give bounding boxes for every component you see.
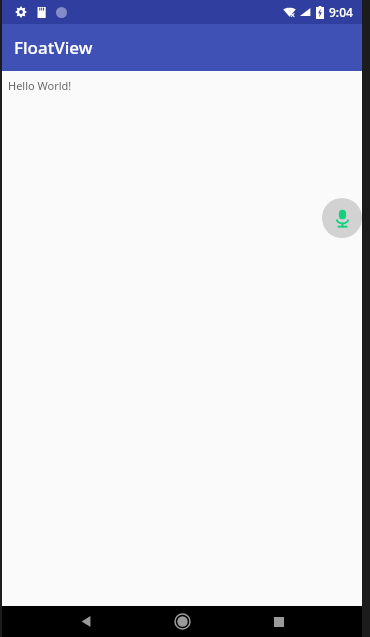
staticText: 9:04 <box>329 4 353 20</box>
button[interactable]: Recents <box>263 606 295 637</box>
staticText: FloatView <box>14 36 93 59</box>
button[interactable]: Back <box>70 606 102 637</box>
button[interactable]: Voice input <box>322 198 362 238</box>
staticText: Hello World! <box>8 78 72 93</box>
button[interactable]: Home <box>166 606 198 637</box>
